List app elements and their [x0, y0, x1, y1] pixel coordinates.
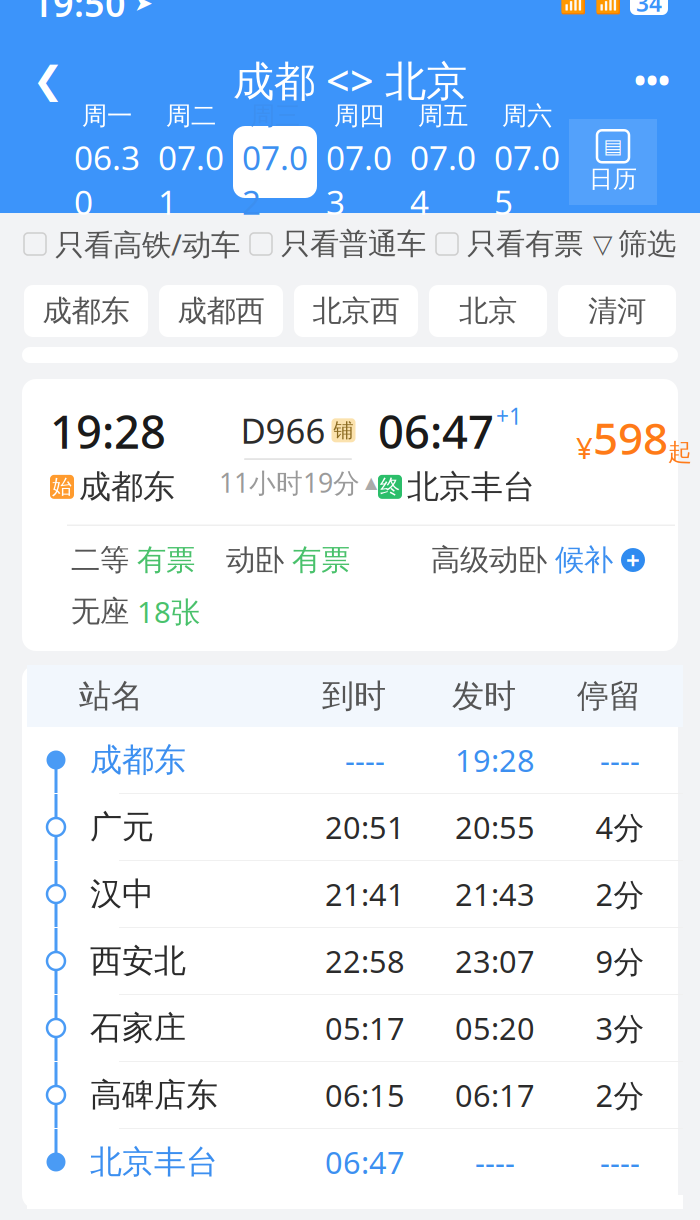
button[interactable]: 北京西 — [294, 285, 418, 337]
staticText: +1 — [496, 401, 522, 431]
button[interactable]: 日历 — [569, 119, 657, 205]
staticText: 日历 — [589, 164, 637, 194]
staticText: 20:51 — [325, 807, 405, 847]
staticText: 周三 — [250, 100, 300, 131]
staticText: 07.05 — [494, 135, 560, 224]
staticText: 周二 — [166, 100, 216, 131]
staticText: 19:50 — [32, 0, 126, 27]
staticText: 筛选 — [618, 226, 676, 262]
staticText: + — [626, 544, 640, 576]
staticText: 9分 — [595, 941, 644, 981]
staticText: 06:15 — [325, 1075, 405, 1115]
staticText: 只看普通车 — [281, 226, 426, 262]
staticText: 19:28 — [455, 740, 535, 780]
button[interactable]: 只看有票 — [436, 226, 583, 262]
button[interactable]: 成都西 — [159, 285, 283, 337]
staticText: 07.04 — [410, 135, 476, 224]
staticText: 周五 — [418, 100, 468, 131]
staticText: 成都东 — [90, 740, 186, 780]
staticText: ---- — [600, 1142, 640, 1182]
staticText: 598 — [593, 408, 668, 467]
staticText: 清河 — [588, 293, 646, 329]
button[interactable]: 周六 — [485, 126, 569, 198]
button[interactable]: 更多 — [622, 50, 682, 110]
staticText: ---- — [345, 740, 385, 780]
staticText: 动卧 — [226, 542, 284, 578]
staticText: 07.02 — [242, 135, 308, 224]
staticText: 11小时19分 — [219, 465, 360, 500]
staticText: 只看高铁/动车 — [55, 224, 240, 263]
staticText: 发时 — [452, 676, 516, 716]
staticText: ---- — [600, 740, 640, 780]
staticText: 06:47 — [325, 1142, 405, 1182]
staticText: 石家庄 — [90, 1008, 186, 1048]
staticText: 停留 — [577, 676, 641, 716]
staticText: 05:20 — [455, 1008, 535, 1048]
staticText: 高碑店东 — [90, 1075, 218, 1115]
staticText: 21:43 — [455, 874, 535, 914]
staticText: 成都西 — [177, 293, 264, 329]
button[interactable]: 成都东 — [24, 285, 148, 337]
staticText: 无座 — [71, 593, 129, 629]
button[interactable]: 清河 — [558, 285, 676, 337]
staticText: 始 — [52, 475, 72, 499]
staticText: ▲ — [365, 473, 377, 492]
staticText: 21:41 — [325, 874, 405, 914]
staticText: 06:17 — [455, 1075, 535, 1115]
button[interactable]: 周二 — [149, 126, 233, 198]
staticText: 北京丰台 — [407, 467, 535, 506]
button[interactable]: ▽ — [593, 226, 676, 262]
staticText: 周六 — [502, 100, 552, 131]
button[interactable]: 19:28 — [22, 379, 678, 651]
staticText: 07.03 — [326, 135, 392, 224]
staticText: D966 — [240, 407, 325, 453]
staticText: 站名 — [79, 676, 143, 716]
staticText: 铺 — [333, 418, 353, 443]
staticText: 到时 — [322, 676, 386, 716]
staticText: 22:58 — [325, 941, 405, 981]
staticText: 二等 — [71, 542, 129, 578]
staticText: 4分 — [595, 807, 644, 847]
staticText: 📶 — [560, 0, 587, 15]
staticText: ➤ — [134, 0, 153, 16]
staticText: 19:28 — [50, 401, 166, 461]
staticText: 有票 — [137, 542, 195, 578]
button[interactable]: 返回 — [18, 50, 78, 110]
staticText: 广元 — [90, 807, 154, 847]
button[interactable]: 只看高铁/动车 — [24, 224, 240, 263]
staticText: 3分 — [595, 1008, 644, 1048]
staticText: 终 — [380, 475, 400, 499]
staticText: 只看有票 — [467, 226, 583, 262]
staticText: 18张 — [137, 592, 200, 631]
staticText: 北京西 — [312, 293, 399, 329]
staticText: 周一 — [82, 100, 132, 131]
staticText: 起 — [668, 437, 692, 467]
button[interactable]: 周四 — [317, 126, 401, 198]
staticText: ▤ — [603, 135, 622, 158]
button[interactable]: 周五 — [401, 126, 485, 198]
staticText: 34 — [636, 0, 662, 18]
button[interactable]: 周一 — [65, 126, 149, 198]
staticText: 2分 — [595, 874, 644, 914]
button[interactable]: 北京 — [429, 285, 547, 337]
staticText: 西安北 — [90, 941, 186, 981]
staticText: 成都东 — [42, 293, 129, 329]
staticText: 汉中 — [90, 874, 154, 914]
staticText: 06.30 — [74, 135, 140, 224]
staticText: 周四 — [334, 100, 384, 131]
staticText: 23:07 — [455, 941, 535, 981]
staticText: ¥ — [576, 428, 593, 467]
staticText: ••• — [634, 59, 670, 101]
staticText: 07.01 — [158, 135, 224, 224]
staticText: 06:47 — [378, 401, 494, 461]
staticText: 北京 — [459, 293, 517, 329]
staticText: ---- — [475, 1142, 515, 1182]
staticText: 2分 — [595, 1075, 644, 1115]
staticText: 候补 — [555, 542, 613, 578]
staticText: ▽ — [593, 230, 612, 258]
staticText: 📶 — [595, 0, 622, 15]
staticText: 成都东 — [79, 467, 175, 506]
staticText: 有票 — [292, 542, 350, 578]
button[interactable]: 周三 — [233, 126, 317, 198]
button[interactable]: 只看普通车 — [250, 226, 426, 262]
